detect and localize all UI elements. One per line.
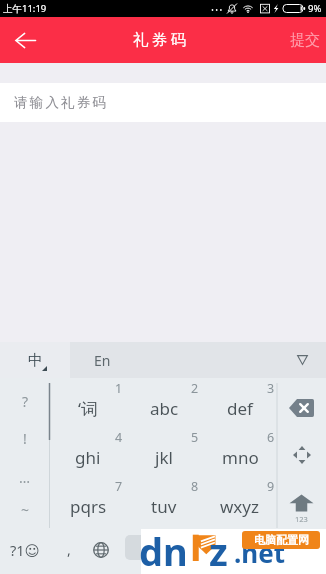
staticText: tuv	[151, 495, 177, 518]
button[interactable]: En	[70, 342, 326, 378]
staticText: 9%	[308, 2, 322, 15]
staticText: 1	[115, 380, 123, 397]
staticText: 6	[267, 429, 275, 446]
staticText: 请输入礼券码	[14, 94, 109, 111]
staticText: 3	[267, 380, 275, 397]
staticText: 中	[28, 351, 43, 370]
staticText: 礼券码	[133, 30, 190, 50]
button[interactable]: def	[202, 384, 278, 433]
staticText: .net	[234, 535, 286, 570]
staticText: 提交	[290, 31, 320, 50]
staticText: 7	[115, 478, 123, 495]
staticText: 8	[191, 478, 199, 495]
staticText: 9	[267, 478, 275, 495]
button[interactable]: ghi	[50, 433, 126, 482]
button[interactable]: wxyz	[202, 482, 278, 531]
staticText: jkl	[155, 446, 173, 469]
staticText: wxyz	[220, 495, 260, 518]
button[interactable]: Switch language	[85, 525, 117, 574]
button[interactable]: 请输入礼券码	[0, 83, 326, 122]
button[interactable]: ~	[0, 490, 50, 528]
staticText: abc	[150, 397, 179, 420]
staticText: 上午11:19	[3, 2, 47, 15]
button[interactable]: …	[0, 458, 50, 496]
staticText: ghi	[75, 446, 101, 469]
staticText: mno	[222, 446, 259, 469]
button[interactable]: mno	[202, 433, 278, 482]
button[interactable]: ‘词	[50, 384, 126, 433]
staticText: 2	[191, 380, 199, 397]
staticText: …	[19, 468, 31, 487]
staticText: 5	[191, 429, 199, 446]
button[interactable]: ?1☺	[0, 528, 50, 572]
staticText: ?	[22, 392, 29, 411]
button[interactable]: Back	[0, 17, 50, 63]
button[interactable]: ?	[0, 382, 50, 420]
button[interactable]: Shift 123	[277, 476, 326, 574]
button[interactable]: abc	[126, 384, 202, 433]
button[interactable]: Hide keyboard	[288, 346, 316, 374]
button[interactable]: !	[0, 419, 50, 457]
button[interactable]: 提交	[280, 17, 326, 63]
staticText: En	[94, 351, 111, 370]
button[interactable]: pqrs	[50, 482, 126, 531]
button[interactable]: Cursor arrows	[277, 430, 326, 479]
staticText: ?1☺	[10, 540, 40, 560]
staticText: pqrs	[70, 495, 107, 518]
staticText: 电脑配置网	[254, 533, 309, 547]
staticText: ‘词	[78, 397, 98, 420]
button[interactable]: ,	[50, 525, 88, 574]
button[interactable]: tuv	[126, 482, 202, 531]
staticText: 4	[115, 429, 123, 446]
button[interactable]: jkl	[126, 433, 202, 482]
staticText: ~	[21, 500, 30, 519]
button[interactable]: Backspace	[277, 383, 326, 432]
button[interactable]: 中	[0, 342, 70, 378]
staticText: def	[227, 397, 253, 420]
staticText: !	[23, 429, 27, 448]
staticText: 123	[295, 514, 308, 524]
staticText: z	[209, 525, 228, 570]
button[interactable]: Space	[125, 535, 265, 560]
staticText: ,	[67, 540, 71, 559]
staticText: dn	[139, 525, 188, 570]
